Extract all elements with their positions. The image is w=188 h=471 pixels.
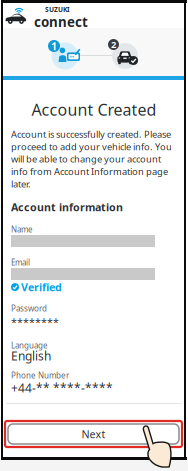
staticText: +44-** ****-**** (11, 380, 113, 396)
staticText: Next (81, 427, 105, 441)
staticText: Account information (11, 200, 123, 214)
staticText: 1 (51, 39, 57, 53)
staticText: Name (11, 224, 33, 235)
staticText: Language (11, 340, 48, 351)
button[interactable]: Next (8, 424, 179, 444)
staticText: English (11, 348, 51, 364)
staticText: 2 (111, 38, 116, 51)
staticText: SUZUKI (45, 5, 70, 14)
staticText: Phone Number (11, 370, 69, 381)
staticText: Password (11, 303, 47, 314)
staticText: Email (11, 257, 30, 268)
staticText: Account is successfully created. Please … (11, 128, 172, 190)
staticText: ******** (11, 315, 59, 329)
staticText: Account Created (31, 99, 156, 120)
staticText: connect (34, 13, 88, 31)
staticText: Verified (21, 280, 62, 294)
